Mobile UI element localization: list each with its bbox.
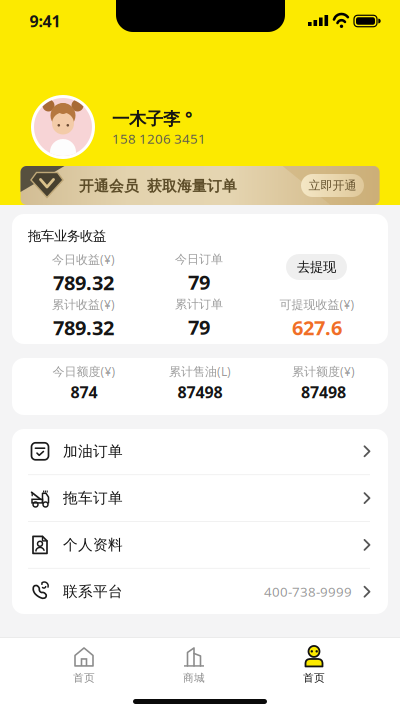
staticText: 个人资料 xyxy=(63,536,123,554)
button[interactable]: 去提现 xyxy=(286,254,347,280)
staticText: 400-738-9999 xyxy=(264,583,352,600)
staticText: 87498 xyxy=(301,381,346,402)
staticText: 累计订单 xyxy=(175,297,223,312)
staticText: 9:41 xyxy=(29,10,60,32)
staticText: 今日订单 xyxy=(175,252,223,267)
button[interactable]: 加油订单 xyxy=(12,428,388,474)
staticText: 79 xyxy=(188,269,210,295)
staticText: 789.32 xyxy=(53,314,114,341)
button[interactable]: 首页 xyxy=(274,642,354,688)
staticText: 去提现 xyxy=(297,259,336,275)
staticText: 累计收益(¥) xyxy=(52,296,115,312)
staticText: 一木子李 ° xyxy=(112,107,192,130)
staticText: 789.32 xyxy=(53,269,114,296)
staticText: 开通会员 获取海量订单 xyxy=(79,177,237,195)
staticText: 立即开通 xyxy=(308,178,356,193)
staticText: 累计额度(¥) xyxy=(292,363,355,379)
staticText: 拖车订单 xyxy=(63,489,123,507)
staticText: 158 1206 3451 xyxy=(112,130,206,147)
button[interactable]: 开通会员 获取海量订单 xyxy=(20,166,379,205)
staticText: 首页 xyxy=(73,671,95,684)
staticText: 首页 xyxy=(303,671,325,684)
button[interactable]: 首页 xyxy=(44,642,124,688)
button[interactable]: 拖车订单 xyxy=(12,475,388,521)
button[interactable]: 商城 xyxy=(154,642,234,688)
staticText: 627.6 xyxy=(292,314,342,341)
button[interactable]: 联系平台 xyxy=(12,569,388,615)
staticText: 今日收益(¥) xyxy=(52,251,115,267)
staticText: 累计售油(L) xyxy=(169,363,231,379)
staticText: 拖车业务收益 xyxy=(28,228,106,244)
staticText: 87498 xyxy=(177,381,222,402)
staticText: 874 xyxy=(70,381,97,402)
staticText: 今日额度(¥) xyxy=(52,363,115,379)
staticText: 可提现收益(¥) xyxy=(279,296,354,312)
staticText: 联系平台 xyxy=(63,583,123,601)
button[interactable]: 个人资料 xyxy=(12,522,388,568)
staticText: 加油订单 xyxy=(63,442,123,460)
staticText: 79 xyxy=(188,314,210,340)
staticText: 商城 xyxy=(183,671,205,684)
